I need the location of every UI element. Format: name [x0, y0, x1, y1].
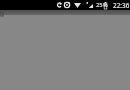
button[interactable]: Sync active: [57, 2, 62, 8]
button[interactable]: [0, 10, 130, 15]
button[interactable]: Wi-Fi connected: [74, 3, 81, 8]
button[interactable]: Open navigation drawer: [0, 12, 4, 17]
staticText: 22:36: [113, 1, 130, 10]
staticText: 25%: [96, 1, 108, 9]
other: Battery 25 percent: [104, 2, 107, 9]
button[interactable]: Mobile signal: [85, 2, 93, 8]
button[interactable]: Alarm set: [64, 2, 70, 8]
